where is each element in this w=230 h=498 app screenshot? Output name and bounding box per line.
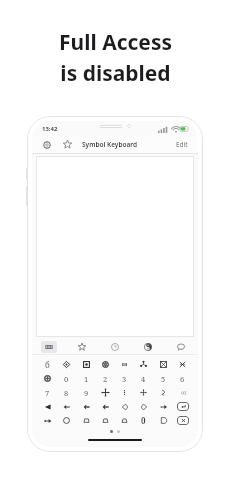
button[interactable]: Symbol 1 — [58, 358, 75, 371]
button[interactable]: Symbol 33 — [58, 414, 75, 427]
button[interactable]: Symbol 23 — [174, 386, 191, 399]
staticText: 0 — [64, 374, 69, 384]
button[interactable]: Symbol 38 — [155, 414, 172, 427]
button[interactable]: Symbol 30 — [155, 400, 172, 413]
button[interactable]: Symbol 11 — [97, 372, 114, 385]
staticText: 5 — [161, 374, 166, 384]
button[interactable]: Symbol 28 — [116, 400, 133, 413]
staticText: 6 — [180, 374, 185, 384]
button[interactable]: Symbol 0 — [39, 358, 56, 371]
button[interactable]: Symbol 15 — [174, 372, 191, 385]
button[interactable]: Symbol 35 — [97, 414, 114, 427]
staticText: 2 — [103, 374, 108, 384]
button[interactable]: Symbol 3 — [97, 358, 114, 371]
button[interactable]: Symbol 22 — [155, 386, 172, 399]
button[interactable]: Symbol 27 — [97, 400, 114, 413]
button[interactable]: Symbol 14 — [155, 372, 172, 385]
button[interactable]: Symbol 36 — [116, 414, 133, 427]
button[interactable]: Symbol 25 — [58, 400, 75, 413]
button[interactable]: Symbol 21 — [135, 386, 152, 399]
button[interactable]: Symbol 32 — [39, 414, 56, 427]
button[interactable]: Edit — [176, 140, 188, 149]
staticText: 1 — [84, 374, 89, 384]
button[interactable]: Symbol 16 — [39, 386, 56, 399]
button[interactable]: Symbol 10 — [78, 372, 95, 385]
staticText: 4 — [141, 374, 146, 384]
button[interactable]: Symbol 9 — [58, 372, 75, 385]
staticText: 8 — [64, 388, 69, 398]
button[interactable]: Symbol 4 — [116, 358, 133, 371]
staticText: 9 — [84, 388, 89, 398]
button[interactable]: Symbol 6 — [155, 358, 172, 371]
staticText: 7 — [45, 388, 50, 398]
staticText: 0 — [141, 415, 146, 426]
button[interactable]: Symbol 34 — [78, 414, 95, 427]
button[interactable]: Keyboard — [41, 341, 57, 353]
button[interactable]: Symbol 7 — [174, 358, 191, 371]
button[interactable]: Settings — [40, 138, 53, 151]
button[interactable]: Symbol 2 — [78, 358, 95, 371]
staticText: Symbol Keyboard — [82, 140, 138, 149]
staticText: is disabled — [60, 59, 171, 88]
staticText: Full Access — [59, 28, 172, 57]
button[interactable]: Symbol 17 — [58, 386, 75, 399]
button[interactable]: Symbol 37 — [135, 414, 152, 427]
staticText: б — [45, 359, 50, 370]
button[interactable]: Symbol 18 — [78, 386, 95, 399]
button[interactable]: Symbol 26 — [78, 400, 95, 413]
button[interactable]: Recent — [107, 341, 123, 353]
button[interactable]: Symbol 31 — [174, 400, 191, 413]
button[interactable]: Symbol 5 — [135, 358, 152, 371]
button[interactable]: Emoji — [173, 341, 189, 353]
button[interactable]: Symbol 39 — [174, 414, 191, 427]
button[interactable]: Symbol 29 — [135, 400, 152, 413]
button[interactable]: Favorites — [61, 138, 74, 151]
button[interactable]: Favorites — [74, 341, 90, 353]
staticText: 13:42 — [42, 125, 58, 133]
button[interactable]: Symbols — [140, 341, 156, 353]
staticText: 3 — [122, 374, 127, 384]
button[interactable]: Symbol 19 — [97, 386, 114, 399]
button[interactable]: Symbol 13 — [135, 372, 152, 385]
staticText: Edit — [176, 140, 188, 149]
button[interactable]: Symbol 8 — [39, 372, 56, 385]
button[interactable]: Symbol 20 — [116, 386, 133, 399]
button[interactable]: Symbol 24 — [39, 400, 56, 413]
button[interactable]: Symbol 12 — [116, 372, 133, 385]
